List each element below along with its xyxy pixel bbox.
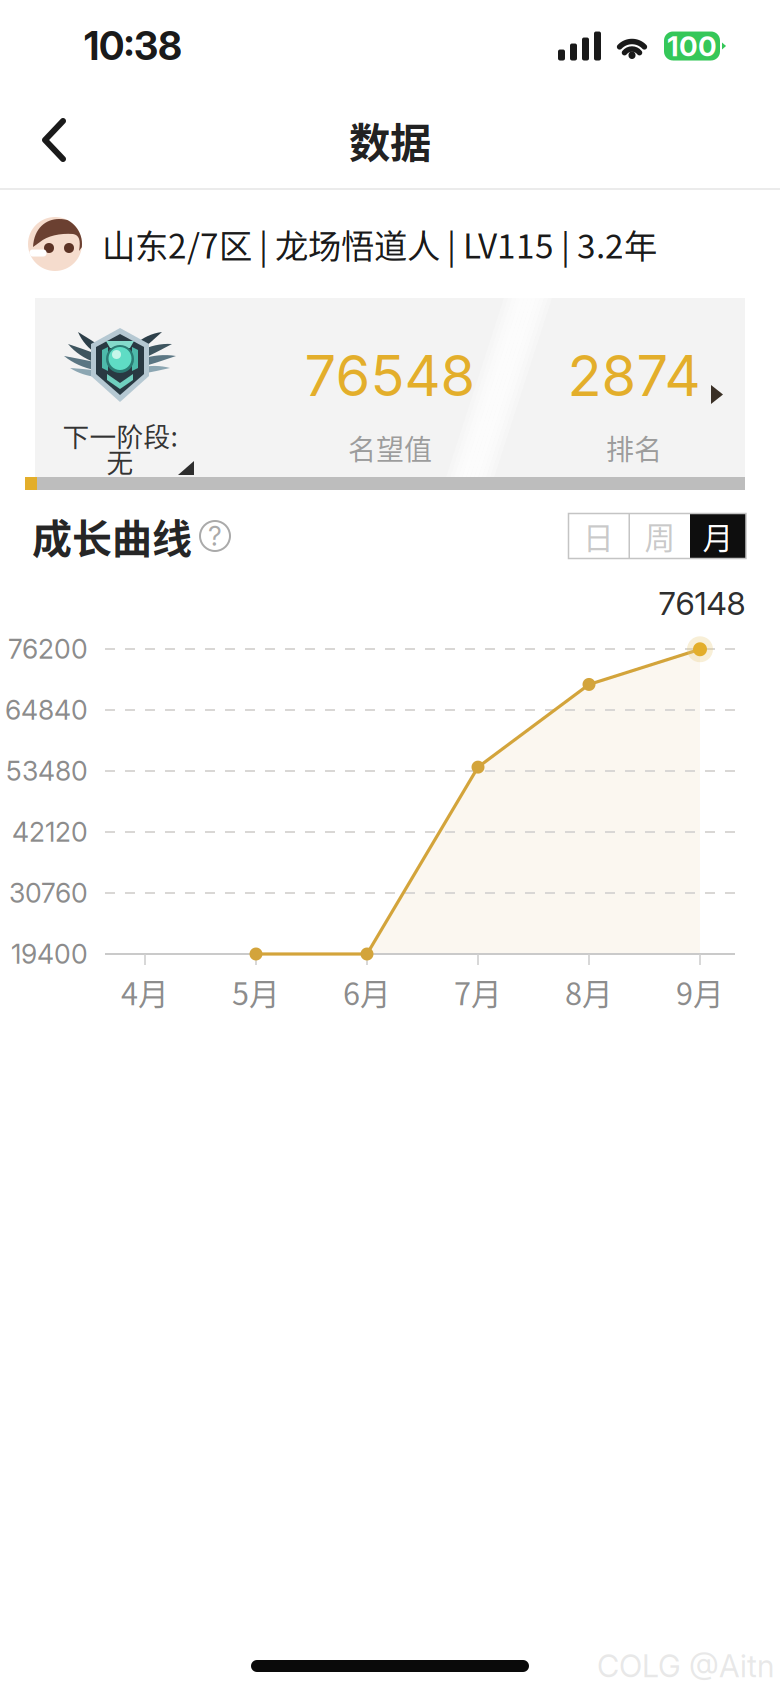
staticText: 19400 xyxy=(11,938,88,970)
staticText: 7月 xyxy=(454,970,502,1014)
staticText: 53480 xyxy=(6,755,88,787)
staticText: 数据 xyxy=(349,110,431,170)
staticText: 月 xyxy=(702,514,733,558)
staticText: 6月 xyxy=(343,970,391,1014)
staticText: 2874 xyxy=(567,342,700,409)
staticText: 成长曲线 xyxy=(32,507,192,565)
staticText: 5月 xyxy=(232,970,280,1014)
staticText: 周 xyxy=(644,514,675,558)
button[interactable]: 周 xyxy=(630,513,690,558)
staticText: 8月 xyxy=(565,970,613,1014)
button[interactable]: 下一阶段: xyxy=(35,298,745,484)
staticText: 10:38 xyxy=(84,23,182,69)
staticText: 64840 xyxy=(5,694,88,726)
staticText: COLG @Aitn xyxy=(597,1647,774,1684)
button[interactable]: Help xyxy=(192,513,238,559)
staticText: 排名 xyxy=(606,427,662,468)
staticText: 100 xyxy=(667,29,717,63)
staticText: 山东2/7区 | 龙场悟道人 | LV115 | 3.2年 xyxy=(102,220,657,268)
staticText: 76148 xyxy=(658,584,745,623)
button[interactable]: 日 xyxy=(568,513,628,558)
staticText: 42120 xyxy=(12,816,88,848)
staticText: 76200 xyxy=(8,633,88,665)
staticText: 4月 xyxy=(121,970,169,1014)
staticText: 名望值 xyxy=(348,427,432,468)
staticText: 30760 xyxy=(9,877,88,909)
staticText: 76548 xyxy=(304,342,475,409)
button[interactable]: 月 xyxy=(690,513,746,558)
button[interactable]: Back xyxy=(35,107,115,173)
staticText: 无 xyxy=(106,442,133,480)
staticText: 下一阶段: xyxy=(62,416,177,454)
staticText: 9月 xyxy=(676,970,724,1014)
staticText: 日 xyxy=(583,514,614,558)
staticText: ? xyxy=(208,520,222,552)
